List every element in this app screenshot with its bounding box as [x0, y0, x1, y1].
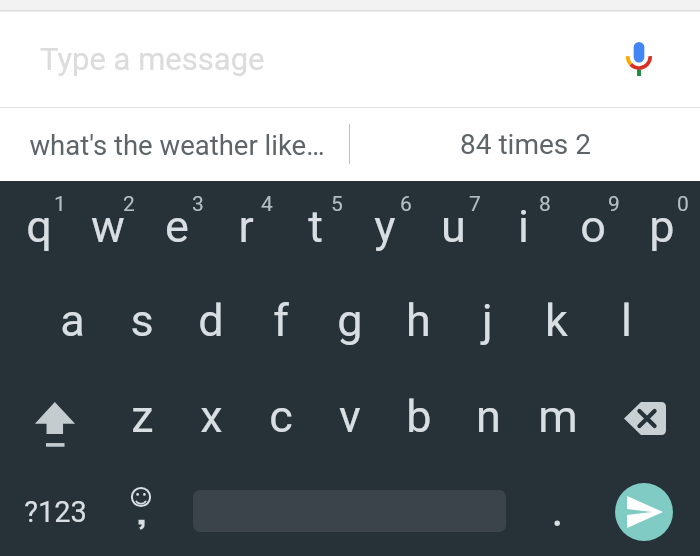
staticText: r [238, 200, 254, 253]
staticText: b [406, 390, 432, 443]
staticText: n [476, 390, 501, 443]
button[interactable]: g [315, 274, 384, 367]
staticText: w [91, 200, 125, 253]
button[interactable]: y [350, 180, 419, 273]
button[interactable]: Shift [11, 374, 99, 467]
button[interactable]: z [108, 370, 177, 463]
staticText: 5 [331, 192, 343, 217]
button[interactable]: q [4, 180, 73, 273]
button[interactable]: Period [521, 466, 593, 556]
button[interactable]: m [523, 370, 592, 463]
staticText: k [545, 294, 568, 347]
staticText: h [406, 294, 431, 347]
button[interactable]: s [107, 274, 176, 367]
staticText: z [131, 390, 154, 443]
staticText: d [198, 294, 224, 347]
button[interactable]: x [177, 370, 246, 463]
staticText: l [621, 294, 632, 347]
button[interactable]: c [246, 370, 315, 463]
staticText: x [200, 390, 223, 443]
button[interactable]: r [211, 180, 280, 273]
button[interactable]: ?123 [11, 466, 99, 556]
button[interactable]: h [384, 274, 453, 367]
staticText: i [518, 200, 529, 253]
staticText: 2 [123, 192, 135, 217]
staticText: a [60, 294, 85, 347]
staticText: 6 [400, 192, 412, 217]
button[interactable]: 84 times 2 [355, 107, 695, 182]
button[interactable]: e [142, 180, 211, 273]
staticText: 8 [539, 192, 551, 217]
button[interactable]: f [246, 274, 315, 367]
button[interactable]: v [315, 370, 384, 463]
staticText: 7 [469, 192, 481, 217]
button[interactable]: Type a message [0, 12, 700, 106]
button[interactable]: b [384, 370, 453, 463]
staticText: t [308, 200, 323, 253]
staticText: g [337, 294, 363, 347]
button[interactable]: n [454, 370, 523, 463]
staticText: v [339, 390, 361, 443]
button[interactable]: p [627, 180, 696, 273]
staticText: u [441, 200, 466, 253]
button[interactable]: i [489, 180, 558, 273]
staticText: ?123 [24, 495, 87, 529]
staticText: j [482, 294, 493, 347]
staticText: 9 [608, 192, 620, 217]
staticText: f [273, 294, 289, 347]
button[interactable]: what's the weather like… [7, 107, 347, 182]
button[interactable]: t [281, 180, 350, 273]
button[interactable]: a [38, 274, 107, 367]
staticText: s [130, 294, 154, 347]
button[interactable]: o [558, 180, 627, 273]
staticText: 84 times 2 [460, 128, 591, 161]
staticText: y [374, 200, 396, 253]
staticText: o [580, 200, 606, 253]
staticText: p [649, 200, 675, 253]
staticText: m [538, 390, 578, 443]
button[interactable]: w [73, 180, 142, 273]
staticText: 4 [261, 192, 273, 217]
button[interactable]: j [453, 274, 522, 367]
button[interactable]: k [522, 274, 591, 367]
staticText: 3 [192, 192, 204, 217]
staticText: e [165, 200, 189, 253]
button[interactable]: l [592, 274, 661, 367]
button[interactable]: d [176, 274, 245, 367]
staticText: c [269, 390, 293, 443]
button[interactable]: Send [615, 483, 673, 541]
staticText: 1 [54, 192, 66, 217]
button[interactable]: Backspace [601, 374, 689, 467]
button[interactable]: Voice input [617, 36, 661, 80]
button[interactable]: u [419, 180, 488, 273]
button[interactable]: Emoji [105, 466, 177, 556]
staticText: q [26, 200, 52, 253]
staticText: Type a message [40, 41, 265, 77]
staticText: what's the weather like… [29, 129, 325, 161]
staticText: 0 [677, 192, 689, 217]
